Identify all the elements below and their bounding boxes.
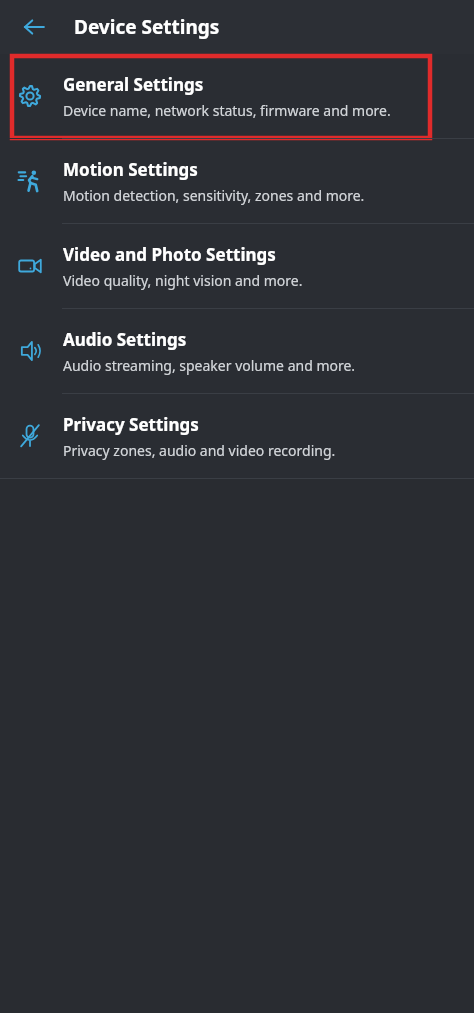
button[interactable]: General Settings [0,54,474,138]
button[interactable]: Motion Settings [0,139,474,223]
staticText: Device name, network status, firmware an… [63,101,391,120]
button[interactable]: Video and Photo Settings [0,224,474,308]
staticText: Audio streaming, speaker volume and more… [63,356,356,375]
staticText: Video quality, night vision and more. [63,271,303,290]
staticText: Privacy zones, audio and video recording… [63,441,336,460]
staticText: General Settings [63,73,204,96]
button[interactable]: Audio Settings [0,309,474,393]
staticText: Device Settings [74,14,220,40]
staticText: Motion Settings [63,158,198,181]
staticText: Video and Photo Settings [63,243,276,266]
button[interactable]: Privacy Settings [0,394,474,478]
staticText: Audio Settings [63,328,187,351]
staticText: Motion detection, sensitivity, zones and… [63,186,365,205]
button[interactable]: Back [12,5,56,49]
staticText: Privacy Settings [63,413,199,436]
